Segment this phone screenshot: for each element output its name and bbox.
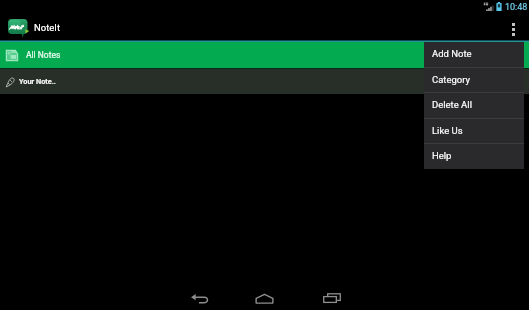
staticText: 10:48: [505, 2, 528, 13]
staticText: NoteIt: [34, 22, 61, 33]
staticText: Category: [432, 74, 471, 85]
button[interactable]: More options: [503, 18, 523, 40]
staticText: All Notes: [26, 50, 61, 60]
button[interactable]: Your Note..: [0, 69, 529, 94]
button[interactable]: Category: [424, 68, 524, 92]
button[interactable]: Add Note: [424, 42, 524, 67]
staticText: Add Note: [432, 48, 472, 59]
button[interactable]: Help: [424, 144, 524, 169]
button[interactable]: Recent apps: [298, 289, 365, 307]
button[interactable]: Delete All: [424, 93, 524, 118]
button[interactable]: Like Us: [424, 119, 524, 143]
staticText: Your Note..: [19, 77, 56, 86]
staticText: Like Us: [432, 125, 463, 136]
staticText: Help: [432, 150, 452, 161]
staticText: Delete All: [432, 99, 472, 110]
button[interactable]: All Notes: [0, 42, 529, 68]
button[interactable]: Back: [164, 289, 231, 307]
button[interactable]: Home: [231, 289, 298, 307]
